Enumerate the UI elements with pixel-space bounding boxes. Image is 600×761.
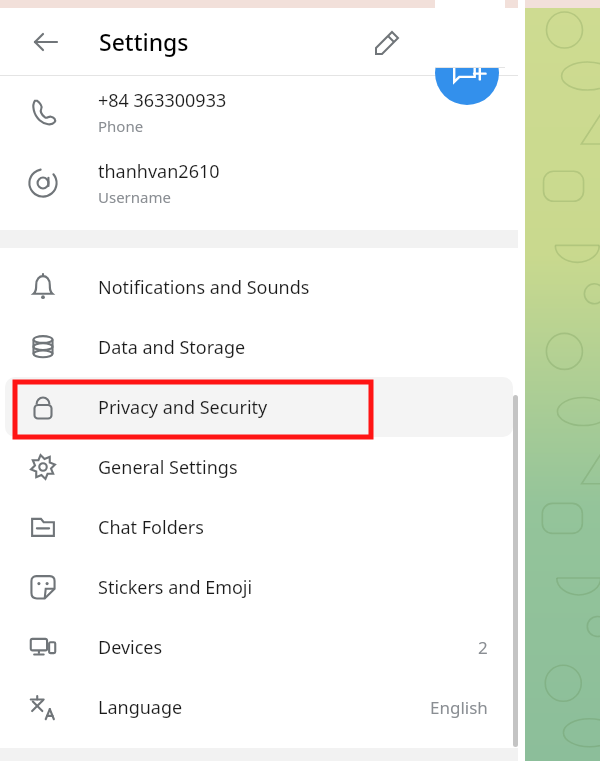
button[interactable]: General Settings bbox=[5, 437, 513, 497]
staticText: Stickers and Emoji bbox=[98, 575, 253, 600]
button[interactable]: Language bbox=[5, 677, 513, 737]
button[interactable]: Edit bbox=[366, 20, 410, 64]
button[interactable]: Stickers and Emoji bbox=[5, 557, 513, 617]
staticText: thanhvan2610 bbox=[98, 159, 220, 184]
button[interactable]: Privacy and Security bbox=[5, 377, 513, 437]
staticText: Username bbox=[98, 187, 171, 207]
button[interactable]: Devices bbox=[5, 617, 513, 677]
staticText: English bbox=[430, 696, 488, 719]
staticText: Phone bbox=[98, 116, 144, 136]
staticText: Data and Storage bbox=[98, 335, 246, 360]
button[interactable]: Data and Storage bbox=[5, 317, 513, 377]
button[interactable]: Back bbox=[24, 20, 68, 64]
button[interactable]: Notifications and Sounds bbox=[5, 257, 513, 317]
staticText: Privacy and Security bbox=[98, 395, 268, 420]
staticText: Chat Folders bbox=[98, 515, 204, 540]
staticText: Notifications and Sounds bbox=[98, 275, 310, 300]
staticText: Language bbox=[98, 695, 183, 720]
button[interactable]: Chat Folders bbox=[5, 497, 513, 557]
staticText: 2 bbox=[478, 636, 488, 659]
button[interactable]: New message bbox=[435, 41, 499, 105]
staticText: Devices bbox=[98, 635, 163, 660]
button[interactable]: +84 363300933 bbox=[0, 76, 518, 147]
staticText: +84 363300933 bbox=[98, 88, 227, 113]
staticText: Settings bbox=[99, 26, 189, 57]
button[interactable]: thanhvan2610 bbox=[0, 147, 518, 218]
staticText: General Settings bbox=[98, 455, 238, 480]
